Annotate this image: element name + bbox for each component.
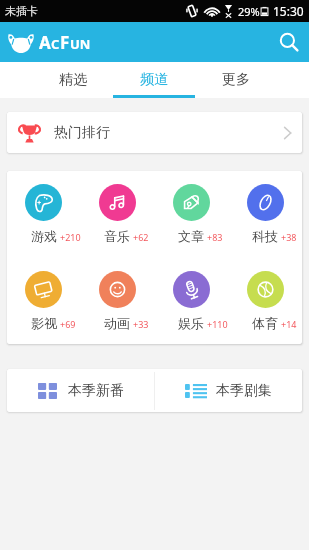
button[interactable]: 更多 xyxy=(195,62,277,98)
button[interactable]: 动画 xyxy=(80,271,154,331)
staticText: F xyxy=(60,31,70,54)
button[interactable]: 音乐 xyxy=(80,184,154,244)
staticText: 更多 xyxy=(222,71,250,89)
staticText: 科技 xyxy=(252,228,278,244)
button[interactable]: 体育 xyxy=(228,271,302,331)
staticText: +38 xyxy=(281,231,297,243)
staticText: UN xyxy=(70,35,91,53)
staticText: 频道 xyxy=(140,71,168,89)
staticText: 音乐 xyxy=(104,228,130,244)
staticText: 精选 xyxy=(59,71,87,89)
button[interactable]: 热门排行 xyxy=(7,112,302,153)
staticText: A xyxy=(39,31,51,54)
staticText: 本季剧集 xyxy=(216,382,272,400)
staticText: 体育 xyxy=(252,315,278,331)
staticText: 动画 xyxy=(104,315,130,331)
staticText: +14 xyxy=(281,318,297,330)
button[interactable]: 科技 xyxy=(228,184,302,244)
staticText: 15:30 xyxy=(273,3,304,19)
staticText: +83 xyxy=(207,231,223,243)
button[interactable]: 精选 xyxy=(32,62,113,98)
staticText: 娱乐 xyxy=(178,315,204,331)
button[interactable]: 娱乐 xyxy=(154,271,228,331)
button[interactable]: 文章 xyxy=(154,184,228,244)
staticText: +110 xyxy=(207,318,228,330)
staticText: 游戏 xyxy=(31,228,57,244)
staticText: +62 xyxy=(133,231,149,243)
button[interactable]: 频道 xyxy=(113,62,195,98)
button[interactable]: 本季剧集 xyxy=(155,369,302,412)
staticText: 热门排行 xyxy=(54,124,110,142)
staticText: 本季新番 xyxy=(68,382,124,400)
staticText: C xyxy=(51,35,60,53)
button[interactable]: 游戏 xyxy=(7,184,80,244)
staticText: 29% xyxy=(238,4,260,19)
staticText: +210 xyxy=(60,231,81,243)
staticText: 文章 xyxy=(178,228,204,244)
staticText: +33 xyxy=(133,318,149,330)
staticText: 未插卡 xyxy=(5,4,38,18)
button[interactable]: 影视 xyxy=(7,271,80,331)
button[interactable]: Search xyxy=(269,22,309,62)
staticText: +69 xyxy=(60,318,76,330)
button[interactable]: 本季新番 xyxy=(7,369,154,412)
staticText: 影视 xyxy=(31,315,57,331)
